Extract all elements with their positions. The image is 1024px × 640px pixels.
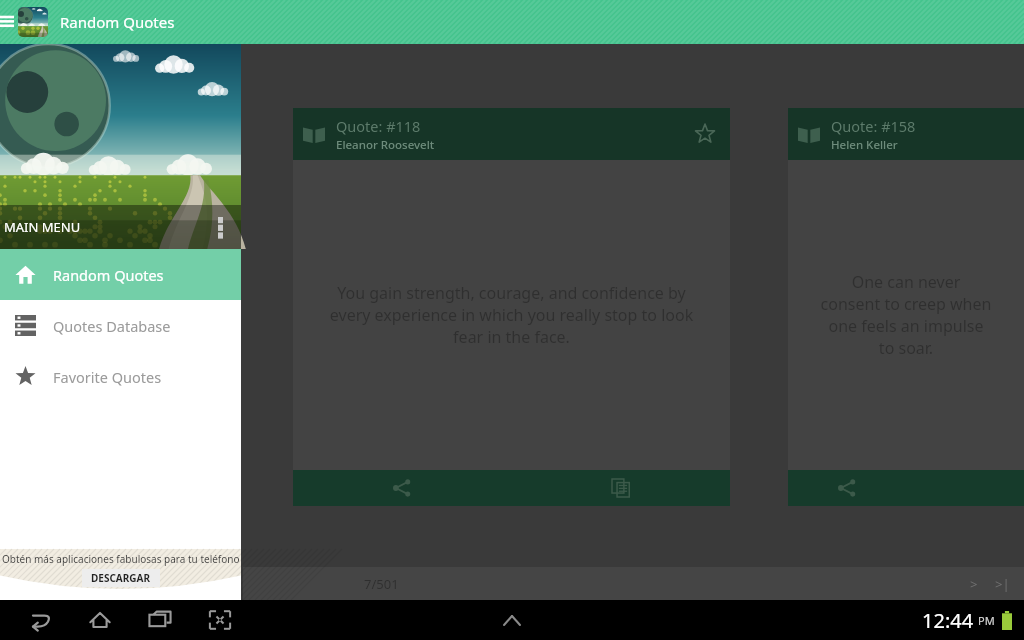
button[interactable]: DESCARGAR: [91, 571, 151, 585]
button[interactable]: Expand: [492, 600, 532, 640]
button[interactable]: Back: [10, 600, 70, 640]
button[interactable]: Home: [70, 600, 130, 640]
staticText: 12:44: [922, 607, 974, 634]
staticText: Quotes Database: [53, 316, 171, 336]
staticText: >: [970, 575, 978, 593]
button[interactable]: Next quote: [960, 569, 988, 599]
button[interactable]: Favorite Quotes: [0, 351, 241, 402]
button[interactable]: Screenshot: [190, 600, 250, 640]
staticText: Favorite Quotes: [53, 367, 162, 387]
button[interactable]: Copy quote: [511, 470, 730, 506]
staticText: Random Quotes: [60, 12, 175, 32]
staticText: >|: [995, 575, 1010, 593]
staticText: Quote: #158: [831, 116, 916, 136]
button[interactable]: Recent apps: [130, 600, 190, 640]
button[interactable]: Share quote: [293, 470, 511, 506]
button[interactable]: Random Quotes: [0, 249, 241, 300]
button[interactable]: Quote: #118: [293, 108, 730, 160]
staticText: PM: [978, 613, 995, 628]
button[interactable]: Quotes Database: [0, 300, 241, 351]
staticText: One can never consent to creep when one …: [820, 271, 992, 359]
staticText: Helen Keller: [831, 137, 898, 153]
button[interactable]: Share quote: [788, 470, 906, 506]
staticText: Eleanor Roosevelt: [336, 137, 435, 153]
staticText: Random Quotes: [53, 265, 164, 285]
staticText: 7/501: [364, 575, 399, 593]
button[interactable]: More options: [211, 214, 229, 240]
button[interactable]: Open navigation drawer: [2, 0, 14, 44]
staticText: MAIN MENU: [4, 218, 81, 236]
staticText: Obtén más aplicaciones fabulosas para tu…: [2, 552, 240, 566]
button[interactable]: Add to favorites: [690, 119, 720, 149]
button[interactable]: Last quote: [988, 569, 1016, 599]
staticText: DESCARGAR: [91, 571, 151, 585]
button[interactable]: Quote: #158: [788, 108, 1024, 160]
staticText: Quote: #118: [336, 116, 421, 136]
staticText: You gain strength, courage, and confiden…: [325, 282, 698, 348]
